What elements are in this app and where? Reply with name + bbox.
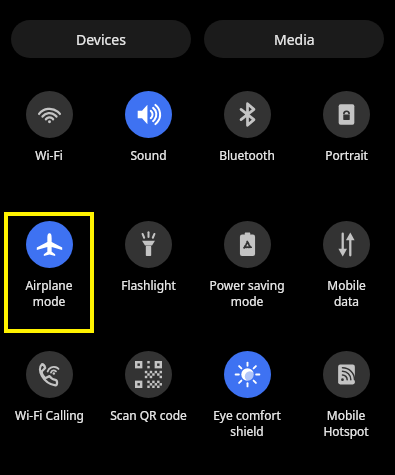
other: Eye comfort shield (224, 351, 271, 398)
button[interactable]: Wi-Fi (4, 82, 94, 203)
staticText: Portrait (325, 147, 368, 163)
staticText: Devices (76, 30, 126, 49)
other: Flashlight (125, 221, 172, 268)
staticText: Mobile Hotspot (323, 407, 369, 439)
other: Scan QR code (125, 351, 172, 398)
button[interactable]: Sound (103, 82, 193, 203)
staticText: Airplane mode (25, 277, 73, 309)
other: Wi-Fi (26, 91, 73, 138)
staticText: Bluetooth (219, 147, 275, 163)
staticText: Scan QR code (110, 407, 187, 423)
other: Airplane mode (26, 221, 73, 268)
button[interactable]: Eye comfort shield (202, 342, 292, 463)
staticText: Sound (130, 147, 167, 163)
other: Mobile data (323, 221, 370, 268)
staticText: Media (274, 30, 315, 49)
button[interactable]: Power saving mode (202, 212, 292, 333)
other: Sound (125, 91, 172, 138)
button[interactable]: Devices (11, 20, 191, 58)
other: Bluetooth (224, 91, 271, 138)
button[interactable]: Mobile data (301, 212, 391, 333)
staticText: Mobile data (327, 277, 366, 309)
staticText: Flashlight (121, 277, 176, 293)
staticText: Power saving mode (209, 277, 285, 309)
staticText: Eye comfort shield (213, 407, 281, 439)
other: Portrait (323, 91, 370, 138)
button[interactable]: Scan QR code (103, 342, 193, 463)
other: Mobile Hotspot (323, 351, 370, 398)
button[interactable]: Flashlight (103, 212, 193, 333)
button[interactable]: Airplane mode (4, 212, 94, 333)
other: Power saving mode (224, 221, 271, 268)
button[interactable]: Media (204, 20, 384, 58)
button[interactable]: Bluetooth (202, 82, 292, 203)
button[interactable]: Mobile Hotspot (301, 342, 391, 463)
button[interactable]: Wi-Fi Calling (4, 342, 94, 463)
button[interactable]: Portrait (301, 82, 391, 203)
staticText: Wi-Fi (35, 147, 63, 163)
other: Wi-Fi Calling (26, 351, 73, 398)
staticText: Wi-Fi Calling (15, 407, 84, 423)
